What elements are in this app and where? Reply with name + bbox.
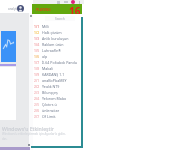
- staticText: anaBoPbaMEY: [42, 78, 67, 83]
- staticText: 1/8: [34, 66, 40, 71]
- staticText: ünlensöze: [42, 108, 60, 113]
- button[interactable]: 1/9: [34, 71, 82, 77]
- staticText: 1/4: [34, 42, 40, 47]
- staticText: 1/1: [34, 24, 40, 29]
- button[interactable]: 2/4: [34, 95, 82, 101]
- button[interactable]: Search: [45, 16, 75, 21]
- staticText: 2/2: [34, 84, 40, 89]
- staticText: 2/3: [34, 90, 40, 95]
- staticText: 1/6: [34, 54, 40, 59]
- staticText: Milli: [42, 24, 49, 29]
- button[interactable]: 2/1: [34, 77, 82, 83]
- button[interactable]: 1/5: [34, 47, 82, 53]
- button[interactable]: 1/7: [34, 59, 82, 65]
- staticText: alp: [42, 54, 48, 59]
- staticText: Windows'u etkinleştirmek için Ayarlar'a …: [2, 132, 66, 136]
- staticText: Raklam ürün: [42, 42, 64, 47]
- staticText: Windows'u Etkinleştir: [2, 125, 54, 132]
- staticText: Yealık NT9: [42, 84, 60, 89]
- button[interactable]: 2/2: [34, 83, 82, 89]
- staticText: 2/1: [34, 78, 40, 83]
- staticText: 1/7: [34, 60, 40, 65]
- button[interactable]: 2/6: [34, 107, 82, 113]
- staticText: 16: [69, 4, 81, 14]
- staticText: 1/5: [34, 48, 40, 53]
- staticText: Makali: [42, 66, 54, 71]
- staticText: analytics: [8, 7, 21, 11]
- staticText: 1/2: [34, 30, 40, 35]
- staticText: İl-64 Poltabok Pandu: [42, 60, 78, 65]
- staticText: Çıkıtırs ü: [42, 102, 57, 107]
- staticText: 1/3: [34, 36, 40, 41]
- staticText: KARDANŞ 1.1: [42, 72, 65, 77]
- staticText: PLAYING: [36, 7, 51, 12]
- button[interactable]: 1/3: [34, 35, 82, 41]
- staticText: 2/5: [34, 102, 40, 107]
- button[interactable]: 1/1: [34, 23, 82, 29]
- staticText: 2/7: [34, 114, 40, 119]
- staticText: Luhraafle®: [42, 48, 61, 53]
- button[interactable]: 2/7: [34, 113, 82, 119]
- button[interactable]: PLAYING: [32, 4, 82, 14]
- staticText: Halk çözüm: [42, 30, 62, 35]
- button[interactable]: Account: [17, 5, 24, 12]
- button[interactable]: 2/5: [34, 101, 82, 107]
- button[interactable]: 1/4: [34, 41, 82, 47]
- staticText: 1/9: [34, 72, 40, 77]
- button[interactable]: 2/3: [34, 89, 82, 95]
- staticText: Bilunççeş: [42, 90, 58, 95]
- staticText: Search: [55, 17, 65, 21]
- button[interactable]: 1/2: [34, 29, 82, 35]
- staticText: Yekırom Mabo: [42, 96, 67, 101]
- staticText: Of Limit.: [42, 114, 57, 119]
- staticText: dın.: [2, 137, 8, 141]
- staticText: 2/6: [34, 108, 40, 113]
- staticText: 2/4: [34, 96, 40, 101]
- staticText: Anlık kuruluşun: [42, 36, 69, 41]
- button[interactable]: 1/6: [34, 53, 82, 59]
- button[interactable]: 1/8: [34, 65, 82, 71]
